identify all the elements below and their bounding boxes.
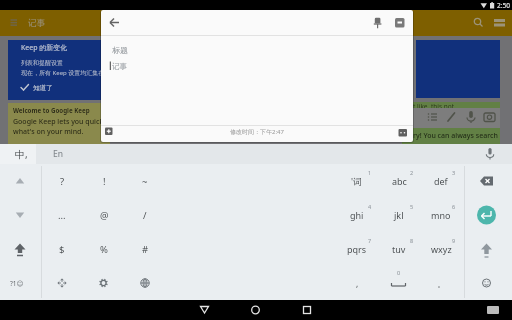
- staticText: 6: [452, 203, 456, 210]
- button[interactable]: $: [0, 237, 142, 261]
- staticText: #: [142, 243, 149, 256]
- button[interactable]: /: [65, 203, 225, 227]
- button[interactable]: [490, 12, 510, 33]
- button[interactable]: 。: [361, 272, 512, 296]
- button[interactable]: @: [24, 203, 184, 227]
- staticText: '词: [351, 175, 363, 187]
- button[interactable]: ,: [277, 272, 437, 296]
- staticText: pqrs: [347, 243, 367, 255]
- button[interactable]: [394, 124, 411, 141]
- staticText: 知道了: [33, 84, 53, 92]
- button[interactable]: !: [24, 169, 184, 193]
- staticText: 2:50: [497, 1, 510, 10]
- button[interactable]: ?1☺: [0, 271, 97, 295]
- staticText: ghi: [350, 209, 364, 221]
- staticText: ry! You can always search: [413, 131, 498, 141]
- staticText: ~: [142, 175, 148, 188]
- staticText: Welcome to Google Keep: [13, 106, 90, 114]
- staticText: tuv: [392, 243, 406, 255]
- button[interactable]: En: [0, 142, 138, 166]
- button[interactable]: [102, 124, 118, 141]
- staticText: Google Keep lets you quickly: [13, 117, 109, 127]
- button[interactable]: [389, 12, 409, 33]
- staticText: 记事: [28, 18, 45, 29]
- button[interactable]: ~: [65, 169, 225, 193]
- staticText: mno: [431, 209, 451, 221]
- staticText: def: [434, 175, 448, 187]
- staticText: 8: [410, 237, 414, 244]
- staticText: En: [53, 148, 63, 160]
- button[interactable]: [8, 40, 110, 100]
- button[interactable]: ...: [0, 203, 142, 227]
- button[interactable]: abc: [319, 169, 479, 193]
- staticText: abc: [392, 175, 407, 187]
- staticText: jkl: [394, 209, 404, 221]
- button[interactable]: ?: [0, 169, 142, 193]
- button[interactable]: [292, 300, 322, 320]
- button[interactable]: [0, 144, 36, 164]
- staticText: 修改时间：下午2:47: [230, 128, 284, 136]
- staticText: 现在，所有 Keep 设置均汇集在: [21, 69, 105, 77]
- button[interactable]: wxyz: [361, 237, 512, 261]
- button[interactable]: [367, 12, 387, 33]
- button[interactable]: def: [361, 169, 512, 193]
- button[interactable]: '词: [277, 169, 437, 193]
- staticText: 0: [397, 269, 401, 276]
- staticText: wxyz: [431, 243, 452, 255]
- staticText: 4: [368, 203, 372, 210]
- button[interactable]: [241, 300, 271, 320]
- staticText: 5: [410, 203, 414, 210]
- staticText: ?: [60, 175, 65, 188]
- staticText: /: [143, 209, 147, 222]
- staticText: 。: [437, 279, 446, 290]
- button[interactable]: [402, 102, 500, 144]
- button[interactable]: pqrs: [277, 237, 437, 261]
- staticText: %: [100, 243, 108, 256]
- button[interactable]: #: [65, 237, 225, 261]
- button[interactable]: tuv: [319, 237, 479, 261]
- staticText: 1: [368, 169, 372, 176]
- staticText: ?1☺: [10, 279, 24, 288]
- button[interactable]: %: [24, 237, 184, 261]
- button[interactable]: mno: [361, 203, 512, 227]
- staticText: 9: [452, 237, 456, 244]
- button[interactable]: [482, 300, 506, 320]
- staticText: 列表和提醒设置: [21, 59, 63, 67]
- staticText: Keep 的新变化: [21, 43, 68, 53]
- button[interactable]: [8, 103, 110, 144]
- button[interactable]: [468, 12, 488, 33]
- button[interactable]: [104, 12, 124, 33]
- staticText: ,: [356, 278, 359, 290]
- button[interactable]: jkl: [319, 203, 479, 227]
- staticText: what's on your mind.: [13, 127, 84, 137]
- staticText: 7: [368, 237, 372, 244]
- button[interactable]: [190, 300, 220, 320]
- staticText: 标题: [112, 45, 128, 55]
- staticText: 2: [410, 169, 414, 176]
- button[interactable]: [4, 12, 24, 33]
- staticText: t like, this not: [413, 102, 455, 111]
- staticText: @: [100, 209, 109, 222]
- staticText: 中,: [15, 147, 28, 161]
- staticText: $: [59, 243, 65, 256]
- staticText: !: [103, 175, 106, 188]
- staticText: 记事: [112, 62, 127, 71]
- staticText: ...: [58, 209, 66, 222]
- button[interactable]: ghi: [277, 203, 437, 227]
- staticText: 3: [452, 169, 456, 176]
